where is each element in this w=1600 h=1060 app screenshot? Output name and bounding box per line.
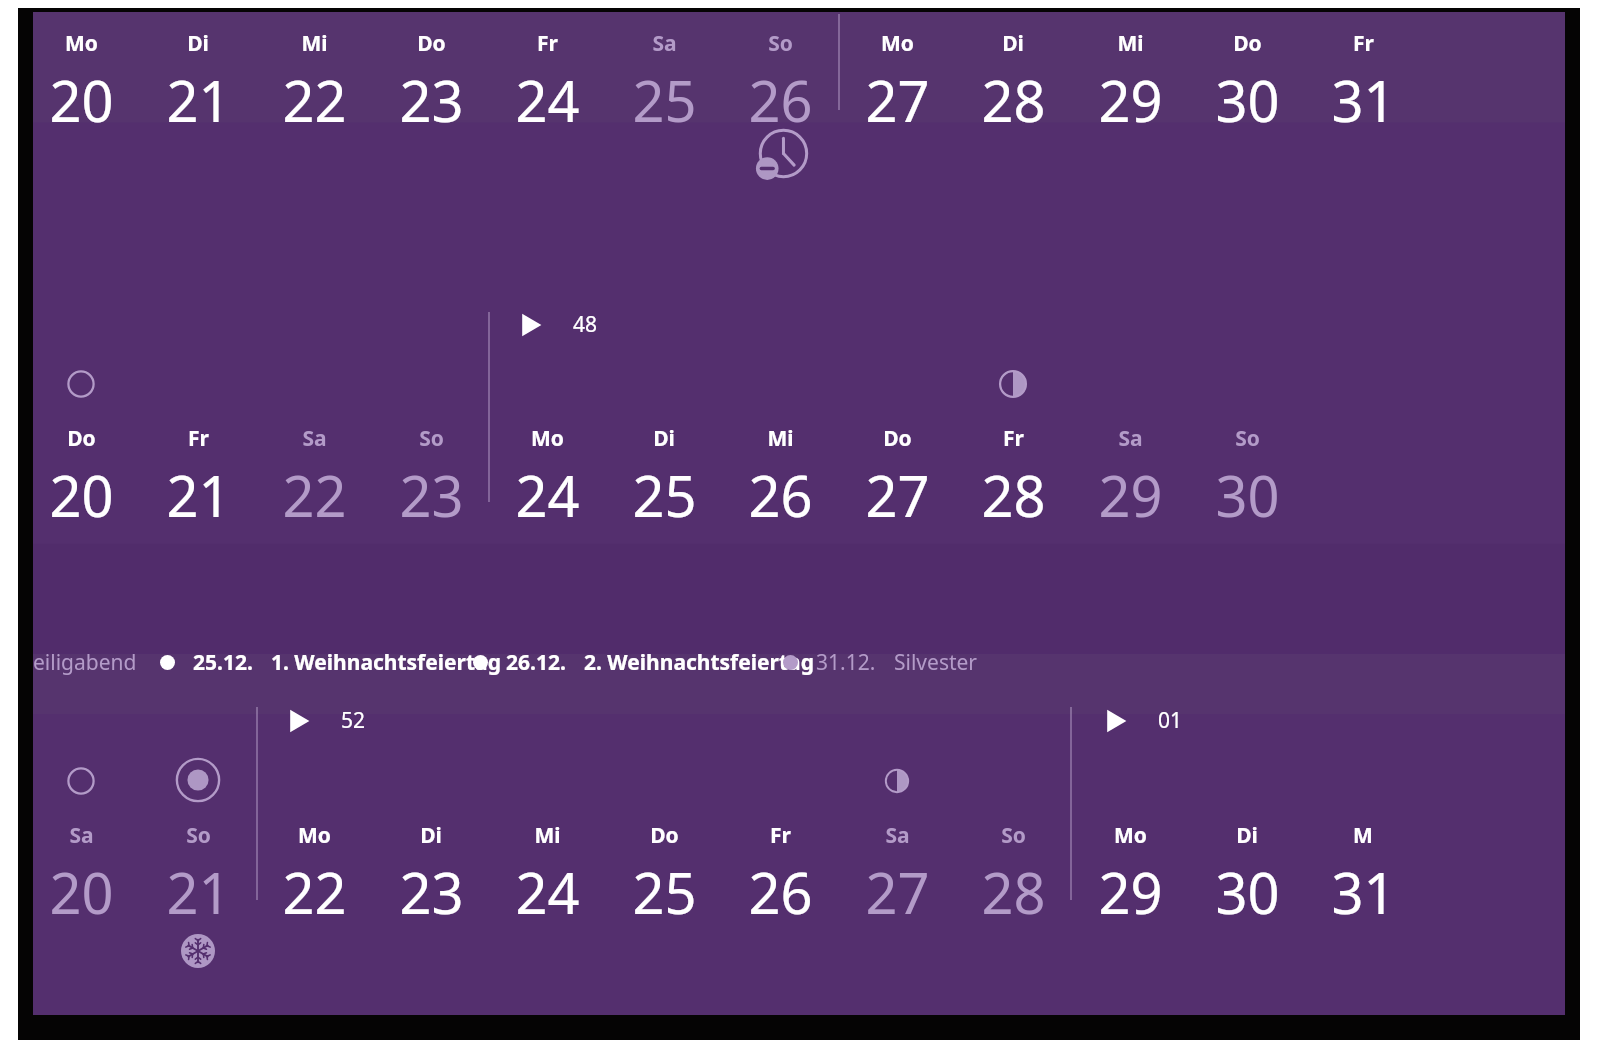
button[interactable]: So xyxy=(143,821,253,930)
staticText: 29 xyxy=(1098,62,1163,138)
staticText: 25 xyxy=(632,457,697,533)
staticText: 20 xyxy=(49,457,114,533)
button[interactable]: Mo xyxy=(1075,821,1185,930)
button[interactable]: Fr xyxy=(958,424,1068,533)
button[interactable]: Neumond xyxy=(66,369,96,399)
staticText: 21 xyxy=(166,62,231,138)
button[interactable]: Di xyxy=(143,29,253,138)
button[interactable]: Kalenderwoche xyxy=(283,706,366,735)
button[interactable]: Mi xyxy=(492,821,602,930)
button[interactable]: Fr xyxy=(725,821,835,930)
staticText: 24 xyxy=(515,457,580,533)
staticText: Sa xyxy=(69,821,94,850)
staticText: Mo xyxy=(1114,821,1147,850)
button[interactable]: Di xyxy=(609,424,719,533)
button[interactable]: Mo xyxy=(492,424,602,533)
button[interactable]: So xyxy=(1192,424,1302,533)
staticText: 20 xyxy=(49,62,114,138)
button[interactable]: So xyxy=(376,424,486,533)
staticText: Sa xyxy=(302,424,327,453)
staticText: Di xyxy=(653,424,675,453)
button[interactable]: 26.12. xyxy=(473,648,814,677)
staticText: 27 xyxy=(865,854,930,930)
staticText: Mo xyxy=(881,29,914,58)
staticText: Di xyxy=(420,821,442,850)
staticText: Mi xyxy=(767,424,794,453)
staticText: 25 xyxy=(632,854,697,930)
button[interactable]: Halbmond xyxy=(998,369,1028,399)
staticText: Do xyxy=(883,424,912,453)
button[interactable]: Di xyxy=(376,821,486,930)
button[interactable]: Mo xyxy=(26,29,136,138)
button[interactable]: So xyxy=(958,821,1068,930)
staticText: Do xyxy=(650,821,679,850)
button[interactable]: Sa xyxy=(26,821,136,930)
other: Kalenderwoche xyxy=(1100,707,1140,735)
button[interactable]: 25.12. xyxy=(160,648,501,677)
button[interactable]: Fr xyxy=(492,29,602,138)
staticText: 52 xyxy=(341,706,366,735)
staticText: 23 xyxy=(399,457,464,533)
button[interactable]: Sa xyxy=(609,29,719,138)
button[interactable]: Fr xyxy=(143,424,253,533)
button[interactable]: Zeitumstellung xyxy=(751,128,809,186)
staticText: Fr xyxy=(770,821,791,850)
button[interactable]: 31.12. xyxy=(783,648,978,677)
button[interactable]: Fr xyxy=(1308,29,1418,138)
staticText: Sa xyxy=(1118,424,1143,453)
button[interactable]: Do xyxy=(1192,29,1302,138)
staticText: 23 xyxy=(399,62,464,138)
staticText: 01 xyxy=(1158,706,1183,735)
staticText: Do xyxy=(67,424,96,453)
staticText: Sa xyxy=(885,821,910,850)
button[interactable]: eiligabend xyxy=(33,648,137,677)
button[interactable]: Kalenderwoche xyxy=(515,310,598,339)
staticText: 25 xyxy=(632,62,697,138)
button[interactable]: Di xyxy=(958,29,1068,138)
staticText: Sa xyxy=(652,29,677,58)
staticText: Di xyxy=(187,29,209,58)
button[interactable]: M xyxy=(1308,821,1418,930)
staticText: Mi xyxy=(301,29,328,58)
button[interactable]: Mi xyxy=(259,29,369,138)
staticText: 27 xyxy=(865,457,930,533)
button[interactable]: Sa xyxy=(259,424,369,533)
staticText: 26 xyxy=(748,854,813,930)
button[interactable]: So xyxy=(725,29,835,138)
staticText: Fr xyxy=(1353,29,1374,58)
staticText: 27 xyxy=(865,62,930,138)
staticText: Di xyxy=(1002,29,1024,58)
button[interactable]: Do xyxy=(609,821,719,930)
staticText: eiligabend xyxy=(33,648,137,677)
staticText: 20 xyxy=(49,854,114,930)
button[interactable]: Mi xyxy=(1075,29,1185,138)
button[interactable]: Do xyxy=(842,424,952,533)
staticText: 29 xyxy=(1098,457,1163,533)
staticText: 31.12. xyxy=(816,648,876,677)
button[interactable]: Mo xyxy=(842,29,952,138)
button[interactable]: Neumond xyxy=(66,766,96,796)
button[interactable]: Vollmond xyxy=(174,756,222,804)
button[interactable]: Mi xyxy=(725,424,835,533)
button[interactable]: Mo xyxy=(259,821,369,930)
button[interactable]: Sa xyxy=(842,821,952,930)
staticText: Fr xyxy=(1003,424,1024,453)
staticText: 22 xyxy=(282,457,347,533)
staticText: So xyxy=(1235,424,1260,453)
button[interactable]: Do xyxy=(376,29,486,138)
button[interactable]: Halbmond xyxy=(884,768,910,794)
staticText: Fr xyxy=(188,424,209,453)
button[interactable]: Wintersonnenwende xyxy=(181,934,215,968)
button[interactable]: Do xyxy=(26,424,136,533)
staticText: 22 xyxy=(282,854,347,930)
staticText: 30 xyxy=(1215,854,1280,930)
button[interactable]: Sa xyxy=(1075,424,1185,533)
staticText: So xyxy=(1001,821,1026,850)
button[interactable]: Kalenderwoche xyxy=(1100,706,1183,735)
staticText: Fr xyxy=(537,29,558,58)
staticText: M xyxy=(1353,821,1373,850)
button[interactable]: Di xyxy=(1192,821,1302,930)
staticText: 22 xyxy=(282,62,347,138)
staticText: 30 xyxy=(1215,457,1280,533)
staticText: 28 xyxy=(981,62,1046,138)
